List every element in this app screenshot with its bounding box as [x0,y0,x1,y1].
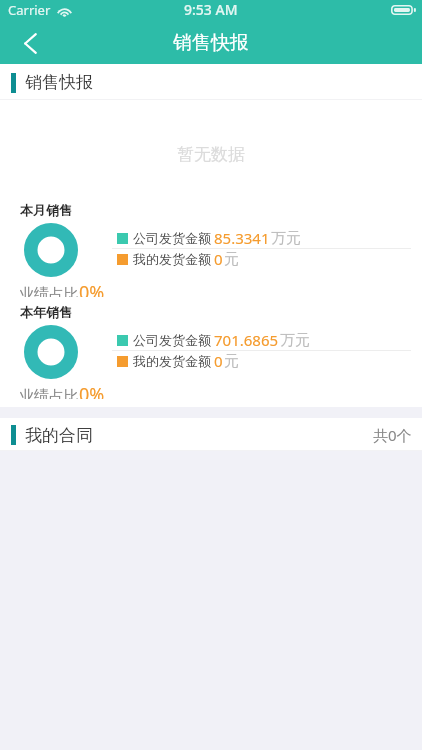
staticText: 701.6865 [214,330,279,350]
staticText: 销售快报 [173,31,249,55]
staticText: 本月销售 [20,202,72,218]
staticText: 万元 [271,229,301,248]
staticText: 0 [214,351,223,371]
staticText: 我的合同 [25,425,93,446]
button[interactable]: 销售快报 [0,64,422,99]
staticText: 9:53 AM [184,0,238,19]
staticText: 公司发货金额 [133,230,211,246]
staticText: 元 [224,250,239,269]
button[interactable]: Back [0,22,60,64]
staticText: 我的发货金额 [133,251,211,267]
staticText: 销售快报 [25,72,93,93]
staticText: 0 [214,249,223,269]
staticText: 共0个 [373,425,412,445]
staticText: 85.3341 [214,228,270,248]
staticText: 本年销售 [20,304,72,320]
staticText: 万元 [280,331,310,350]
staticText: Carrier [8,1,51,19]
staticText: 公司发货金额 [133,332,211,348]
button[interactable]: 我的合同 [0,418,422,450]
staticText: 业绩占比0% [19,280,105,297]
staticText: 业绩占比0% [19,382,105,399]
staticText: 暂无数据 [177,144,245,165]
staticText: 我的发货金额 [133,353,211,369]
staticText: 元 [224,352,239,371]
